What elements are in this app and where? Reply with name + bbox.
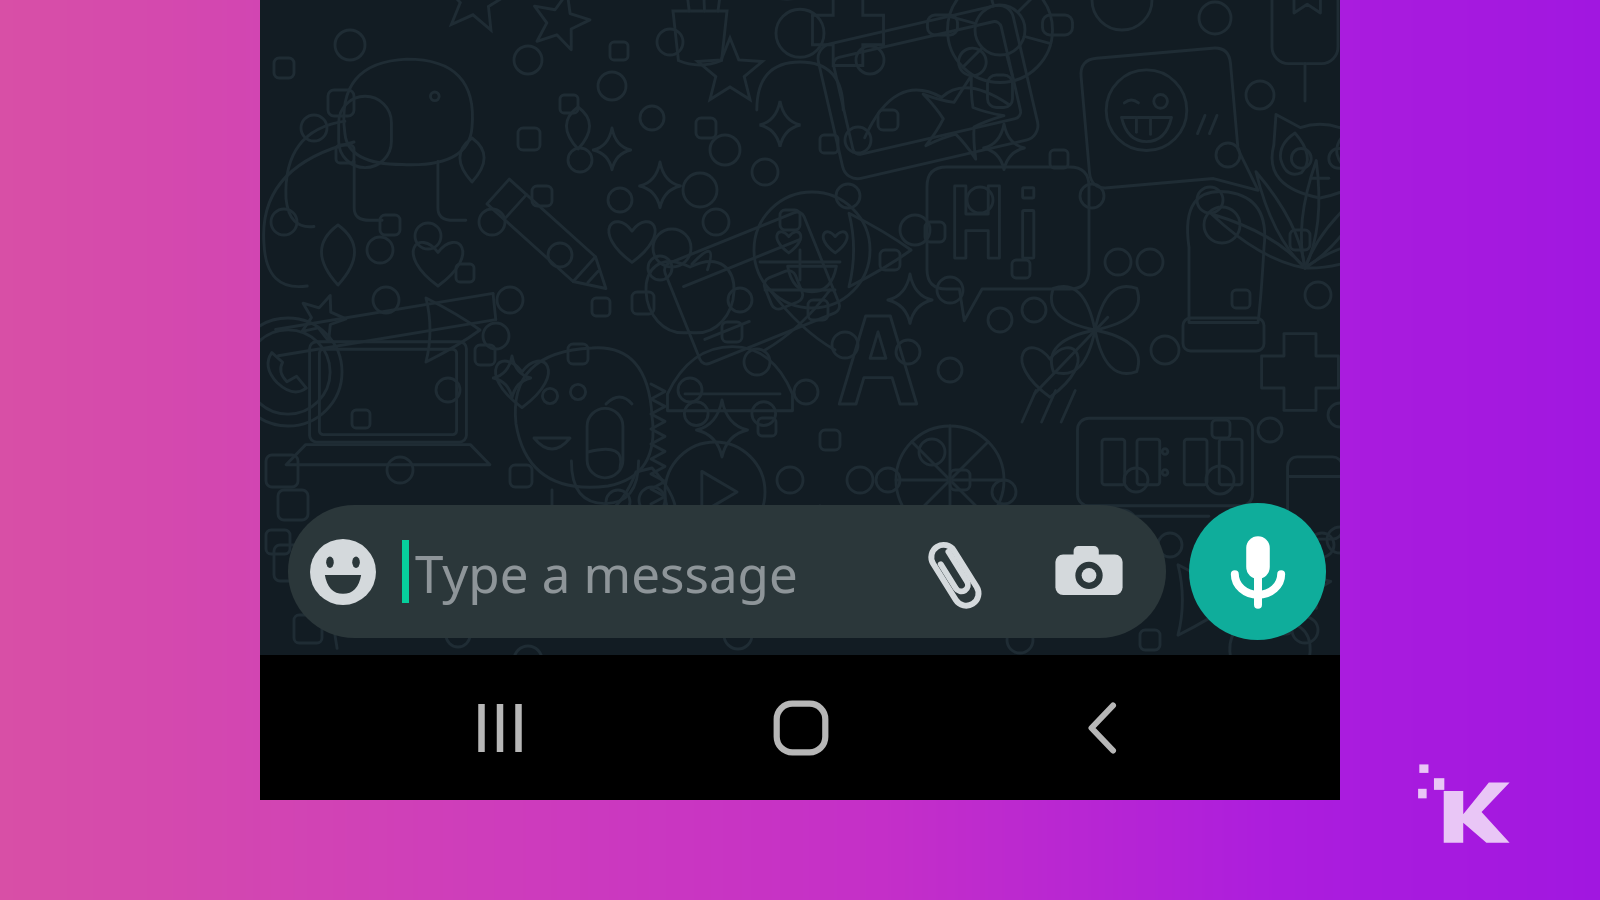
button[interactable]: Emoji xyxy=(310,539,376,605)
staticText: Type a message xyxy=(415,538,798,607)
button[interactable]: Home xyxy=(731,688,871,768)
button[interactable]: Emoji xyxy=(288,505,1166,638)
button[interactable]: Camera xyxy=(1054,539,1124,609)
button[interactable]: Back xyxy=(1033,688,1173,768)
button[interactable]: Recent apps xyxy=(430,688,570,768)
button[interactable]: Record voice message xyxy=(1189,503,1326,640)
button[interactable]: Attach xyxy=(916,533,998,615)
